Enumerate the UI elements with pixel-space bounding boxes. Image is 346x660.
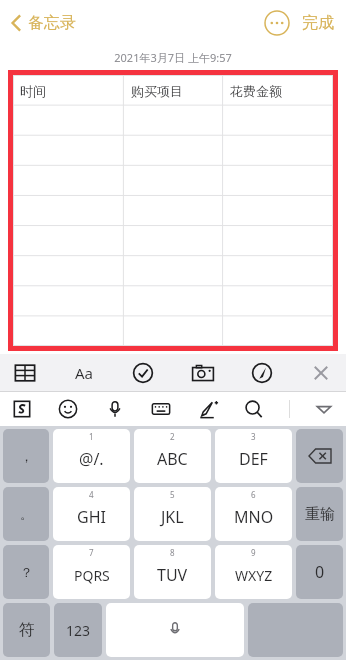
staticText: 5 — [170, 489, 175, 500]
button[interactable]: Sogou input — [10, 397, 34, 421]
button[interactable]: 。 — [3, 487, 49, 541]
button[interactable]: Markup — [249, 360, 275, 386]
staticText: 9 — [251, 547, 256, 558]
staticText: 1 — [89, 431, 94, 442]
button[interactable]: 符 — [3, 603, 50, 657]
staticText: 花费金额 — [230, 83, 282, 99]
button[interactable]: ？ — [3, 545, 49, 599]
button[interactable]: Collapse keyboard — [312, 397, 336, 421]
button[interactable]: ， — [3, 429, 49, 483]
button[interactable]: Keyboard layout — [149, 397, 173, 421]
button[interactable]: Close keyboard — [308, 360, 334, 386]
button[interactable]: Emoji — [56, 397, 80, 421]
button[interactable]: 5 — [134, 487, 211, 541]
button[interactable]: 9 — [215, 545, 292, 599]
button[interactable]: Checklist — [130, 360, 156, 386]
staticText: GHI — [77, 506, 106, 528]
button[interactable]: 3 — [215, 429, 292, 483]
staticText: 123 — [66, 621, 91, 640]
button[interactable]: 6 — [215, 487, 292, 541]
button[interactable]: Voice input — [103, 397, 127, 421]
button[interactable]: 0 — [296, 545, 343, 599]
staticText: ， — [20, 448, 33, 464]
button[interactable]: More options — [264, 10, 290, 36]
staticText: 6 — [251, 489, 256, 500]
staticText: 重输 — [305, 505, 335, 524]
button[interactable]: delete — [296, 429, 343, 483]
button[interactable]: Camera — [190, 360, 216, 386]
staticText: 完成 — [302, 13, 334, 33]
button[interactable]: 7 — [53, 545, 130, 599]
staticText: ？ — [20, 564, 33, 580]
staticText: JKL — [161, 506, 184, 528]
staticText: MNO — [234, 506, 274, 528]
staticText: ABC — [157, 448, 188, 470]
staticText: @/. — [79, 448, 104, 470]
button[interactable]: Space / voice input — [106, 603, 244, 657]
staticText: Aa — [75, 363, 94, 383]
staticText: WXYZ — [235, 566, 273, 585]
button[interactable]: 时间 — [13, 75, 333, 346]
staticText: PQRS — [74, 566, 110, 585]
staticText: 购买项目 — [131, 83, 183, 99]
staticText: 符 — [19, 620, 35, 640]
button[interactable]: 8 — [134, 545, 211, 599]
button[interactable]: 完成 — [300, 9, 336, 37]
staticText: TUV — [157, 564, 188, 586]
staticText: 。 — [20, 506, 33, 522]
staticText: 0 — [315, 561, 325, 583]
button[interactable]: Search — [242, 397, 266, 421]
staticText: 4 — [89, 489, 94, 500]
staticText: 8 — [170, 547, 175, 558]
button[interactable]: Text format — [71, 360, 97, 386]
button[interactable]: 4 — [53, 487, 130, 541]
button[interactable]: 备忘录 — [6, 9, 80, 37]
staticText: 7 — [89, 547, 94, 558]
button[interactable]: Handwriting — [196, 397, 220, 421]
staticText: 2021年3月7日 上午9:57 — [114, 50, 232, 65]
button[interactable]: 1 — [53, 429, 130, 483]
button[interactable]: Insert table — [12, 360, 38, 386]
button[interactable]: 重输 — [296, 487, 343, 541]
staticText: 2 — [170, 431, 175, 442]
staticText: 时间 — [20, 83, 46, 99]
button[interactable]: 2 — [134, 429, 211, 483]
staticText: 备忘录 — [28, 13, 76, 33]
button[interactable]: 123 — [54, 603, 102, 657]
staticText: 3 — [251, 431, 256, 442]
staticText: DEF — [239, 448, 268, 470]
